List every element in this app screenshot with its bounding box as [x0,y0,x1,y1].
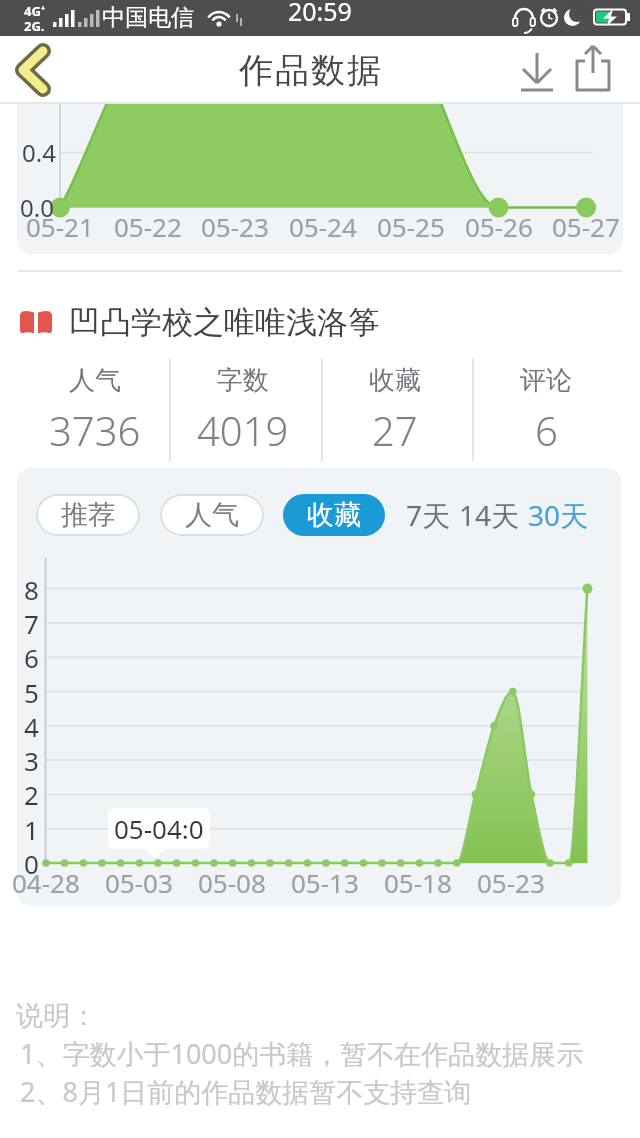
staticText: 说明： [16,999,97,1033]
staticText: 5 [24,675,39,710]
staticText: 6 [535,403,558,457]
staticText: 04-28 [12,865,80,900]
staticText: 4 [24,709,39,744]
staticText: 0.4 [22,136,56,169]
staticText: 2G. [24,17,45,35]
button[interactable]: 人气 [160,494,264,536]
staticText: 4G⁺ [24,2,46,20]
staticText: 3736 [49,403,141,457]
staticText: 2 [24,777,39,812]
staticText: 人气 [185,498,239,532]
staticText: 05-25 [377,209,445,244]
staticText: 推荐 [61,498,115,532]
staticText: 05-24 [289,209,357,244]
staticText: 14天 [459,496,520,534]
staticText: 字数 [217,364,269,397]
staticText: 作品数据 [238,49,382,92]
button[interactable]: 30天 [518,496,598,534]
staticText: 中国电信 [102,3,194,32]
staticText: 05-21 [26,209,94,244]
staticText: 1、字数小于1000的书籍，暂不在作品数据展示 [20,1035,584,1072]
staticText: 05-22 [114,209,182,244]
staticText: 05-03 [105,865,173,900]
button[interactable]: 14天 [449,496,529,534]
staticText: 评论 [520,364,572,397]
button[interactable] [512,46,562,96]
staticText: 7 [24,606,39,641]
staticText: 8 [24,572,39,607]
staticText: 凹凸学校之唯唯浅洛筝 [69,303,379,342]
staticText: 1 [24,812,39,847]
staticText: 05-26 [465,209,533,244]
staticText: 05-23 [477,865,545,900]
staticText: 05-27 [552,209,620,244]
staticText: 7天 [406,496,451,534]
staticText: 0.0 [20,191,54,224]
button[interactable] [568,44,618,98]
staticText: 27 [372,403,418,457]
staticText: 人气 [69,364,121,397]
staticText: 05-23 [201,209,269,244]
staticText: 4019 [197,403,289,457]
staticText: 2、8月1日前的作品数据暂不支持查询 [20,1073,472,1110]
staticText: 20:59 [288,0,352,28]
staticText: 30天 [528,496,589,534]
staticText: 收藏 [307,498,361,532]
button[interactable]: 收藏 [283,494,385,536]
staticText: 05-04:0 [114,811,204,846]
staticText: 05-13 [291,865,359,900]
staticText: 6 [24,640,39,675]
button[interactable]: 推荐 [36,494,140,536]
staticText: 收藏 [369,364,421,397]
staticText: 3 [24,743,39,778]
staticText: 05-08 [198,865,266,900]
button[interactable]: 7天 [388,496,468,534]
staticText: 05-18 [384,865,452,900]
staticText: 0 [24,846,39,881]
button[interactable] [0,36,70,104]
